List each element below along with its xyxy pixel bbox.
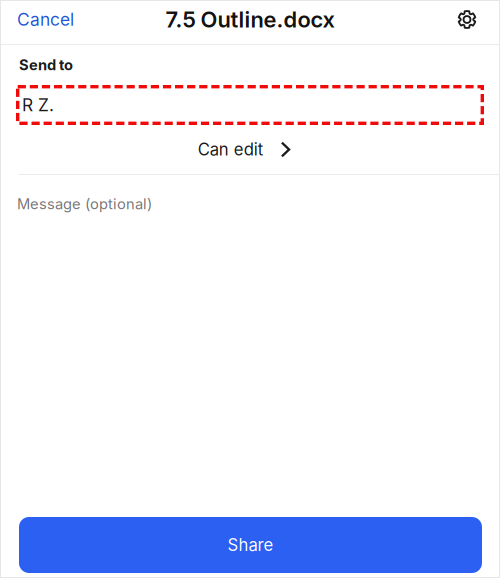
- staticText: R Z.: [22, 94, 54, 115]
- button[interactable]: Settings: [437, 0, 500, 39]
- staticText: Cancel: [17, 9, 74, 30]
- staticText: Can edit: [198, 139, 263, 160]
- button[interactable]: Message (optional): [0, 175, 500, 221]
- button[interactable]: Cancel: [0, 0, 95, 39]
- button[interactable]: R Z.: [16, 85, 484, 125]
- staticText: Share: [227, 535, 273, 555]
- staticText: Send to: [19, 56, 73, 74]
- staticText: Message (optional): [17, 195, 152, 213]
- button[interactable]: Can edit: [0, 125, 500, 174]
- button[interactable]: Share: [19, 517, 482, 573]
- staticText: 7.5 Outline.docx: [165, 6, 334, 33]
